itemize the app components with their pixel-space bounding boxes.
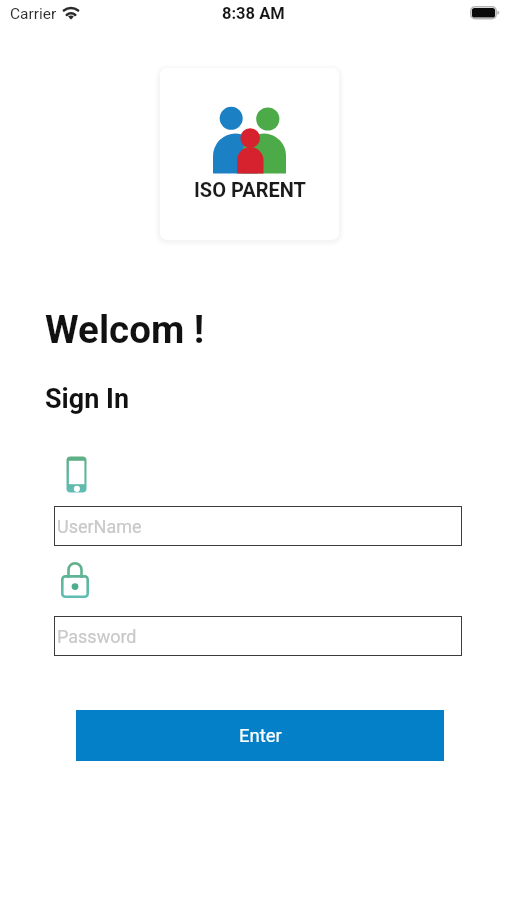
- staticText: Welcom !: [45, 307, 205, 352]
- other: Password: [61, 562, 89, 598]
- staticText: Sign In: [45, 383, 130, 415]
- staticText: ISO PARENT: [194, 178, 306, 201]
- staticText: Enter: [239, 725, 282, 747]
- staticText: Password: [57, 626, 137, 647]
- button[interactable]: Enter: [76, 710, 444, 761]
- staticText: Carrier: [10, 5, 57, 23]
- button[interactable]: Password: [54, 616, 462, 656]
- other: Phone number: [66, 456, 87, 493]
- other: Wi-Fi: [59, 4, 83, 22]
- staticText: 8:38 AM: [222, 4, 285, 23]
- button[interactable]: ISO PARENT: [160, 68, 339, 240]
- button[interactable]: UserName: [54, 506, 462, 546]
- staticText: UserName: [57, 516, 142, 537]
- other: Battery: [470, 6, 500, 20]
